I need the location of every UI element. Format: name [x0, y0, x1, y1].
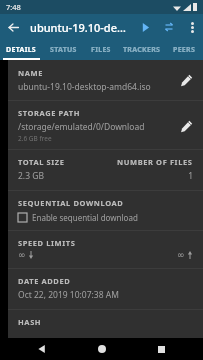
button[interactable]: Back [25, 338, 59, 360]
button[interactable]: Enable sequential download [18, 212, 138, 223]
staticText: PEERS [173, 45, 196, 55]
staticText: 1 [188, 170, 193, 182]
button[interactable]: STATUS [43, 40, 84, 60]
staticText: Enable sequential download [32, 212, 138, 223]
button[interactable]: FILES [84, 40, 118, 60]
button[interactable]: PEERS [165, 40, 203, 60]
button[interactable]: NAME [8, 60, 203, 100]
staticText: NUMBER OF FILES [117, 157, 193, 167]
staticText: ubuntu-19.10-de… [30, 20, 133, 35]
button[interactable]: STORAGE PATH [8, 101, 203, 149]
staticText: 7:48 [6, 2, 21, 12]
button[interactable]: DETAILS [0, 40, 43, 60]
staticText: FILES [91, 45, 111, 55]
button[interactable]: More options [181, 16, 203, 38]
staticText: NAME [18, 68, 43, 78]
staticText: SPEED LIMITS [18, 238, 76, 248]
button[interactable]: TRACKERS [118, 40, 165, 60]
staticText: 2.6 GB free [18, 134, 52, 143]
button[interactable]: SPEED LIMITS [8, 231, 203, 268]
button[interactable]: Edit name [173, 67, 199, 93]
button[interactable]: HASH [8, 310, 203, 338]
staticText: ∞ [18, 250, 26, 260]
staticText: 2.3 GB [18, 170, 44, 182]
button[interactable]: Home [85, 338, 119, 360]
staticText: STATUS [50, 45, 77, 55]
staticText: TOTAL SIZE [18, 157, 65, 167]
staticText: /storage/emulated/0/Download [18, 121, 145, 133]
staticText: STORAGE PATH [18, 108, 80, 118]
staticText: TRACKERS [123, 45, 161, 55]
staticText: ∞ [177, 250, 185, 260]
button[interactable]: Recent apps [144, 338, 178, 360]
staticText: DATE ADDED [18, 276, 71, 286]
button[interactable]: Sequential [157, 15, 181, 39]
staticText: HASH [18, 317, 42, 327]
staticText: ubuntu-19.10-desktop-amd64.iso [18, 81, 151, 93]
button[interactable]: Change storage path [173, 113, 199, 139]
staticText: SEQUENTIAL DOWNLOAD [18, 198, 124, 208]
button[interactable]: Start torrent [133, 15, 157, 39]
button[interactable]: Navigate up [0, 14, 26, 40]
staticText: Oct 22, 2019 10:07:38 AM [18, 289, 119, 301]
staticText: DETAILS [6, 45, 37, 55]
